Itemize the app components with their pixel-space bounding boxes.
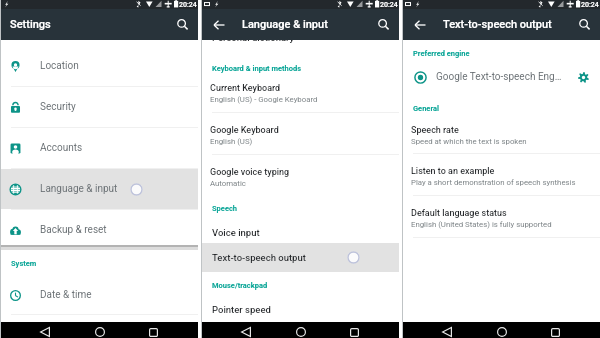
button[interactable]: Google voice typing: [201, 155, 399, 196]
staticText: Text-to-speech output: [443, 18, 552, 31]
staticText: Keyboard & input methods: [212, 64, 302, 73]
button[interactable]: Engine settings: [571, 65, 595, 89]
button[interactable]: Back: [28, 322, 61, 338]
button[interactable]: Text-to-speech output: [201, 243, 399, 272]
button[interactable]: Language & input: [0, 169, 198, 209]
staticText: 20:24: [179, 1, 197, 9]
button[interactable]: Backup & reset: [0, 210, 198, 250]
button[interactable]: Pointer speed: [201, 299, 399, 319]
button[interactable]: Back: [430, 322, 463, 338]
button[interactable]: Google Keyboard: [201, 113, 399, 154]
button[interactable]: Location: [0, 46, 198, 86]
staticText: Google Keyboard: [210, 125, 279, 136]
staticText: Language & input: [40, 183, 118, 195]
button[interactable]: Accounts: [0, 128, 198, 168]
staticText: Personal dictionary: [212, 32, 295, 43]
button[interactable]: Current Keyboard: [201, 71, 399, 112]
button[interactable]: Recent apps: [539, 322, 572, 338]
button[interactable]: Default language status: [402, 196, 600, 237]
staticText: Google voice typing: [210, 167, 290, 178]
staticText: Listen to an example: [411, 166, 495, 177]
staticText: Backup & reset: [40, 224, 107, 236]
staticText: Speech: [212, 204, 238, 213]
staticText: 20:24: [380, 1, 398, 9]
staticText: System: [11, 259, 37, 268]
staticText: Accounts: [40, 142, 83, 154]
button[interactable]: Google Text-to-speech Eng…: [402, 64, 600, 90]
button[interactable]: Voice input: [201, 222, 399, 243]
button[interactable]: Security: [0, 87, 198, 127]
staticText: Security: [40, 101, 76, 113]
button[interactable]: Listen to an example: [402, 154, 600, 195]
button[interactable]: Recent apps: [338, 322, 371, 338]
staticText: Default language status: [411, 208, 507, 219]
staticText: Current Keyboard: [210, 83, 281, 94]
button[interactable]: Home: [485, 322, 518, 338]
staticText: Speech rate: [411, 125, 459, 136]
staticText: 20:24: [581, 1, 599, 9]
staticText: General: [413, 104, 440, 113]
button[interactable]: Search: [575, 15, 595, 35]
staticText: Date & time: [40, 289, 92, 301]
button[interactable]: Date & time: [0, 275, 198, 315]
staticText: Mouse/trackpad: [212, 281, 268, 290]
staticText: Location: [40, 60, 79, 72]
button[interactable]: Navigate up: [210, 16, 228, 34]
button[interactable]: Navigate up: [411, 16, 429, 34]
staticText: Speed at which the text is spoken: [411, 137, 527, 146]
staticText: English (US): [210, 137, 253, 146]
staticText: English (United States) is fully support…: [411, 220, 552, 229]
staticText: Pointer speed: [212, 304, 271, 315]
button[interactable]: Home: [83, 322, 116, 338]
staticText: English (US) - Google Keyboard: [210, 95, 318, 104]
button[interactable]: Back: [229, 322, 262, 338]
staticText: Text-to-speech output: [212, 252, 306, 263]
staticText: Language & input: [242, 18, 328, 31]
staticText: Automatic: [210, 179, 246, 188]
staticText: Preferred engine: [413, 49, 470, 58]
button[interactable]: Speech rate: [402, 118, 600, 153]
button[interactable]: Search: [173, 15, 193, 35]
staticText: Google Text-to-speech Eng…: [436, 71, 562, 83]
button[interactable]: Search: [374, 15, 394, 35]
staticText: Voice input: [212, 227, 260, 238]
button[interactable]: Home: [284, 322, 317, 338]
staticText: Play a short demonstration of speech syn…: [411, 178, 576, 187]
button[interactable]: Recent apps: [137, 322, 170, 338]
staticText: Settings: [10, 18, 51, 31]
